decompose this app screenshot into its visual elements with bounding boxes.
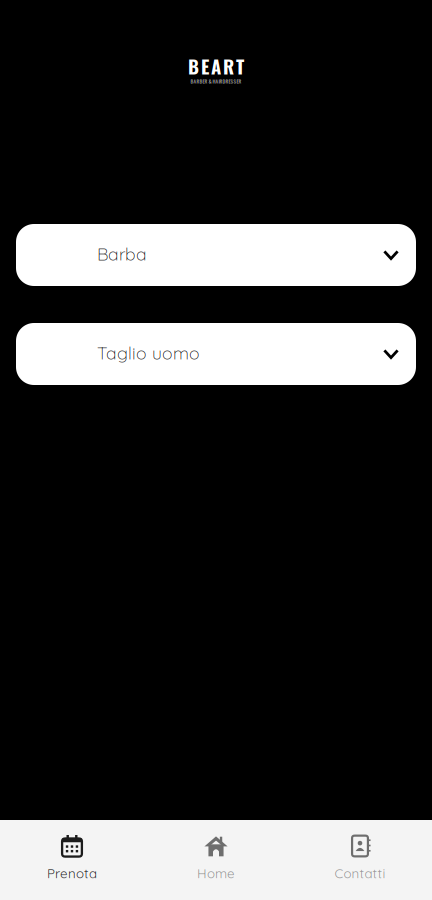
staticText: B [190,77,193,85]
staticText: R [225,77,228,85]
staticText: Home [197,865,235,882]
staticText: R [204,77,207,85]
staticText: T [236,52,244,80]
button[interactable]: Taglio uomo [16,323,416,385]
staticText: B [199,77,202,85]
staticText: S [230,77,233,85]
staticText: E [236,77,238,85]
staticText: B [188,52,199,80]
staticText: D [222,77,225,85]
staticText: E [201,52,209,80]
staticText: Barba [97,243,147,265]
staticText: R [223,52,234,80]
staticText: S [233,77,236,85]
staticText: A [215,77,218,85]
button[interactable]: Contatti [288,820,432,900]
staticText: Taglio uomo [97,342,200,364]
staticText: E [228,77,230,85]
staticText: R [238,77,241,85]
staticText: H [212,77,215,85]
staticText: A [193,77,196,85]
button[interactable]: Prenota [0,820,144,900]
staticText: R [196,77,199,85]
staticText: Prenota [47,865,97,882]
staticText: R [219,77,222,85]
button[interactable]: Barba [16,224,416,286]
staticText: I [218,77,219,85]
staticText: E [202,77,204,85]
staticText: A [211,52,221,80]
staticText: & [208,77,211,85]
staticText: Contatti [334,865,385,882]
button[interactable]: Home [144,820,288,900]
